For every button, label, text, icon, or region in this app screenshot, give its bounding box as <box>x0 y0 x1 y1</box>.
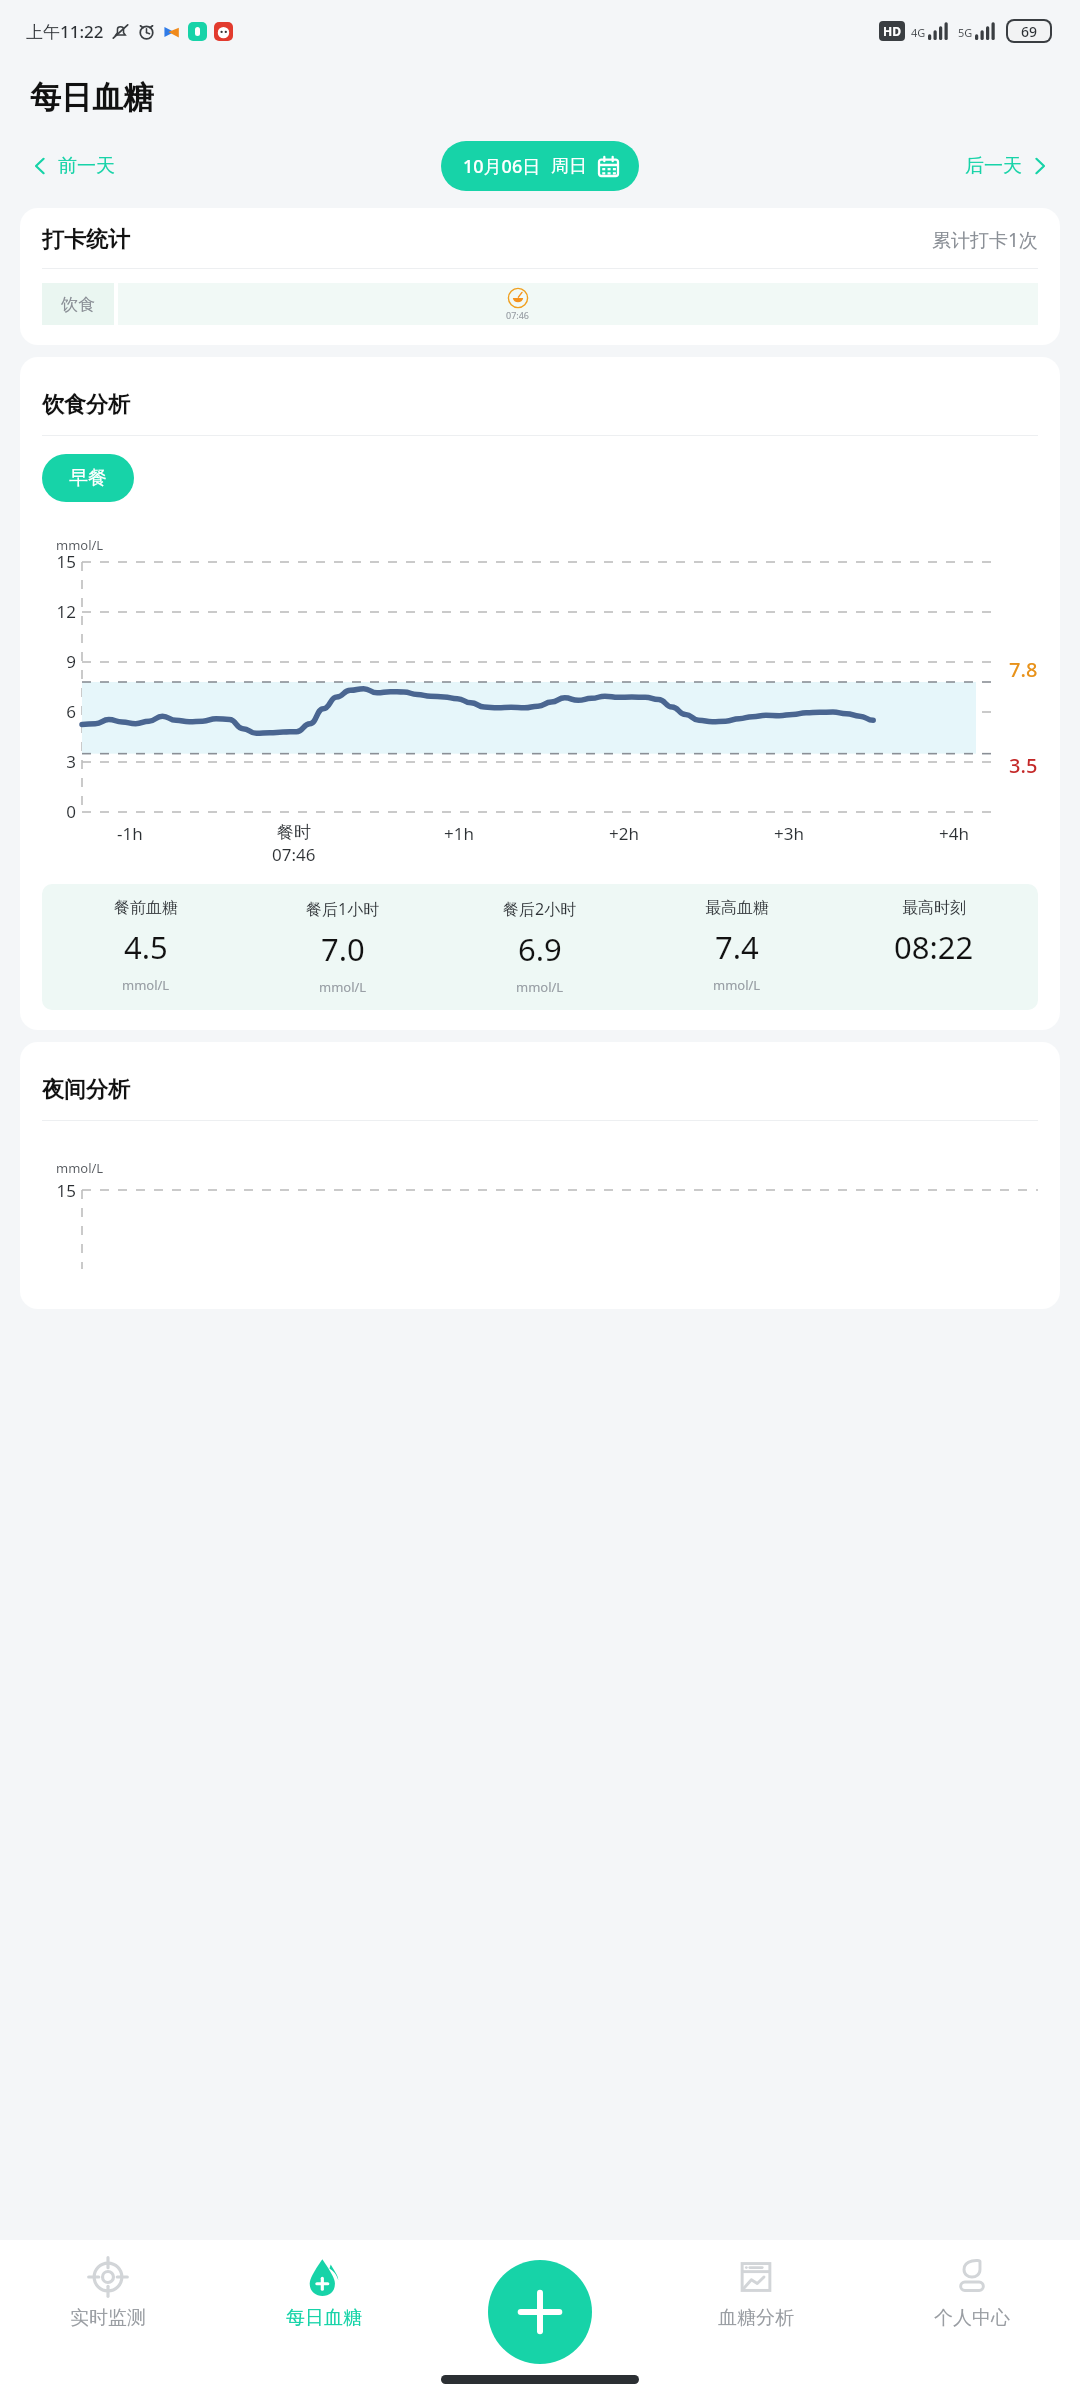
staticText: +3h <box>774 822 804 845</box>
staticText: +2h <box>609 822 639 845</box>
staticText: 08:22 <box>894 926 974 968</box>
staticText: 4G <box>911 25 926 40</box>
button[interactable]: 实时监测 <box>0 2240 216 2358</box>
staticText: 7.4 <box>715 926 759 968</box>
staticText: 每日血糖 <box>286 2306 362 2330</box>
staticText: mmol/L <box>713 976 761 994</box>
button[interactable]: 10月06日 <box>441 141 639 191</box>
staticText: mmol/L <box>319 978 367 996</box>
button[interactable]: 饮食分析 <box>20 357 1060 1030</box>
staticText: 夜间分析 <box>42 1076 130 1104</box>
staticText: 前一天 <box>58 154 115 178</box>
staticText: 4.5 <box>124 926 168 968</box>
button[interactable]: 每日血糖 <box>216 2240 432 2358</box>
staticText: 5G <box>958 25 973 40</box>
button[interactable]: 个人中心 <box>864 2240 1080 2358</box>
staticText: 每日血糖 <box>30 78 154 117</box>
staticText: 实时监测 <box>70 2306 146 2330</box>
staticText: 最高血糖 <box>705 898 769 918</box>
button[interactable]: 添加记录 <box>488 2260 592 2364</box>
staticText: 打卡统计 <box>42 226 130 254</box>
staticText: 7.8 <box>1009 656 1038 683</box>
staticText: +4h <box>939 822 969 845</box>
staticText: 餐后1小时 <box>306 898 380 920</box>
staticText: 69 <box>1021 22 1038 41</box>
staticText: 最高时刻 <box>902 898 966 918</box>
staticText: 早餐 <box>69 466 107 490</box>
button[interactable]: 夜间分析 <box>20 1042 1060 1309</box>
staticText: 15 <box>42 550 76 573</box>
button[interactable]: 后一天 <box>959 148 1056 184</box>
staticText: 6 <box>42 700 76 723</box>
button[interactable]: 早餐 <box>42 454 134 502</box>
staticText: 6.9 <box>518 928 562 970</box>
staticText: 0 <box>42 800 76 823</box>
staticText: 餐前血糖 <box>114 898 178 918</box>
staticText: 累计打卡1次 <box>932 227 1038 253</box>
staticText: mmol/L <box>56 1159 104 1177</box>
staticText: HD <box>883 23 901 39</box>
staticText: 个人中心 <box>934 2306 1010 2330</box>
staticText: mmol/L <box>516 978 564 996</box>
staticText: +1h <box>444 822 474 845</box>
staticText: 餐时 <box>277 822 311 843</box>
button[interactable]: 血糖分析 <box>648 2240 864 2358</box>
staticText: 餐后2小时 <box>503 898 577 920</box>
button[interactable]: 前一天 <box>24 148 121 184</box>
staticText: 10月06日 <box>463 154 541 179</box>
staticText: 3 <box>42 750 76 773</box>
staticText: 07:46 <box>506 309 530 321</box>
staticText: 饮食分析 <box>42 391 130 419</box>
staticText: 3.5 <box>1009 752 1038 779</box>
staticText: 上午11:22 <box>26 20 104 43</box>
staticText: 12 <box>42 600 76 623</box>
staticText: 后一天 <box>965 154 1022 178</box>
staticText: 血糖分析 <box>718 2306 794 2330</box>
staticText: 饮食 <box>61 294 95 315</box>
button[interactable]: 打卡统计 <box>20 208 1060 345</box>
staticText: 15 <box>42 1179 76 1202</box>
staticText: 周日 <box>551 155 587 178</box>
staticText: mmol/L <box>56 536 104 554</box>
staticText: -1h <box>117 822 143 845</box>
staticText: 9 <box>42 650 76 673</box>
staticText: mmol/L <box>122 976 170 994</box>
staticText: 7.0 <box>321 928 365 970</box>
staticText: 07:46 <box>272 843 316 866</box>
